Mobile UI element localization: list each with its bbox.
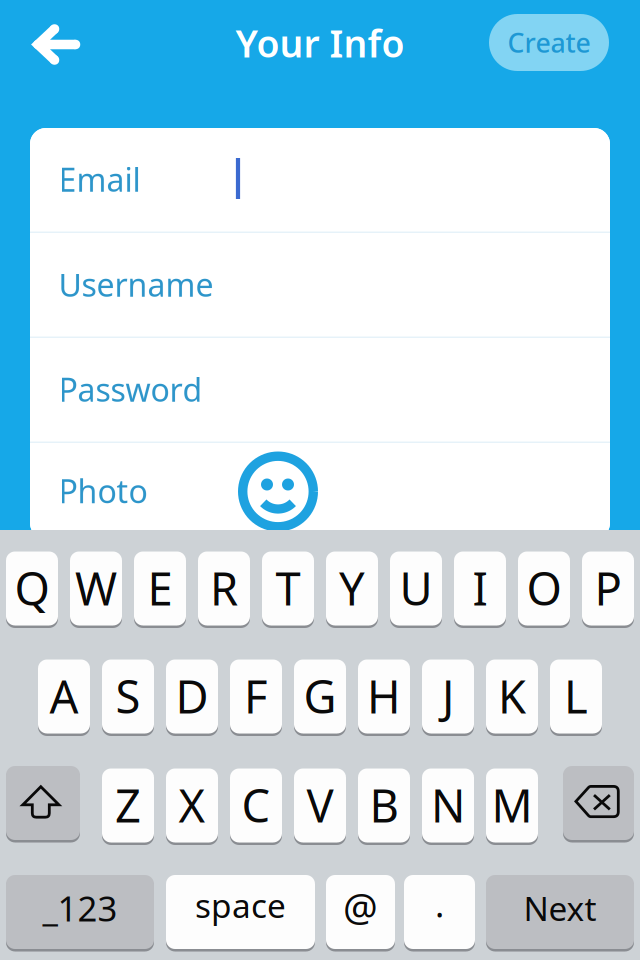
button[interactable]: @ <box>326 872 395 951</box>
button[interactable]: Q <box>6 549 58 628</box>
button[interactable]: M <box>486 766 538 845</box>
button[interactable]: Create <box>489 14 609 71</box>
staticText: F <box>244 666 268 726</box>
button[interactable]: Delete <box>563 766 634 845</box>
button[interactable]: D <box>166 657 218 736</box>
button[interactable]: Password <box>30 338 610 441</box>
staticText: Create <box>507 25 590 60</box>
staticText: T <box>275 558 300 618</box>
button[interactable]: H <box>358 657 410 736</box>
button[interactable]: O <box>518 549 570 628</box>
staticText: Password <box>58 368 202 410</box>
staticText: Photo <box>58 469 147 512</box>
staticText: I <box>472 558 487 618</box>
staticText: M <box>491 775 532 835</box>
staticText: @ <box>343 880 378 932</box>
button[interactable]: Email <box>30 128 610 231</box>
button[interactable]: _123 <box>6 872 154 951</box>
button[interactable]: T <box>262 549 314 628</box>
button[interactable]: Z <box>102 766 154 845</box>
button[interactable]: X <box>166 766 218 845</box>
staticText: B <box>369 775 398 835</box>
staticText: U <box>399 558 432 618</box>
button[interactable]: P <box>582 549 634 628</box>
button[interactable]: V <box>294 766 346 845</box>
button[interactable]: Next <box>486 872 634 951</box>
button[interactable]: I <box>454 549 506 628</box>
staticText: S <box>115 666 140 726</box>
button[interactable]: N <box>422 766 474 845</box>
button[interactable]: Y <box>326 549 378 628</box>
staticText: Y <box>339 558 365 618</box>
button[interactable]: B <box>358 766 410 845</box>
button[interactable]: S <box>102 657 154 736</box>
button[interactable]: F <box>230 657 282 736</box>
staticText: K <box>498 666 526 726</box>
staticText: A <box>49 666 78 726</box>
staticText: _123 <box>42 885 117 931</box>
button[interactable]: Username <box>30 233 610 336</box>
staticText: X <box>178 775 205 835</box>
button[interactable]: . <box>404 872 475 951</box>
button[interactable]: R <box>198 549 250 628</box>
staticText: Email <box>58 158 140 200</box>
staticText: Username <box>58 263 213 305</box>
button[interactable]: L <box>550 657 602 736</box>
staticText: E <box>147 558 172 618</box>
staticText: Q <box>14 558 49 618</box>
button[interactable]: A <box>38 657 90 736</box>
button[interactable]: Back <box>0 0 100 86</box>
staticText: N <box>431 775 465 835</box>
staticText: J <box>442 666 454 726</box>
button[interactable]: G <box>294 657 346 736</box>
staticText: P <box>594 558 621 618</box>
button[interactable]: U <box>390 549 442 628</box>
button[interactable]: space <box>166 872 315 951</box>
button[interactable]: C <box>230 766 282 845</box>
staticText: L <box>564 666 588 726</box>
button[interactable]: Shift <box>6 766 80 845</box>
staticText: H <box>367 666 401 726</box>
staticText: Z <box>115 775 141 835</box>
staticText: . <box>435 881 444 927</box>
staticText: G <box>303 666 336 726</box>
staticText: O <box>526 558 561 618</box>
staticText: D <box>175 666 208 726</box>
staticText: R <box>210 558 238 618</box>
button[interactable]: J <box>422 657 474 736</box>
staticText: C <box>241 775 270 835</box>
staticText: W <box>75 558 117 618</box>
staticText: Next <box>523 886 596 930</box>
button[interactable]: E <box>134 549 186 628</box>
staticText: Your Info <box>235 18 404 68</box>
button[interactable]: Add photo <box>233 446 323 536</box>
button[interactable]: K <box>486 657 538 736</box>
staticText: V <box>306 775 333 835</box>
button[interactable]: W <box>70 549 122 628</box>
staticText: space <box>195 883 286 927</box>
